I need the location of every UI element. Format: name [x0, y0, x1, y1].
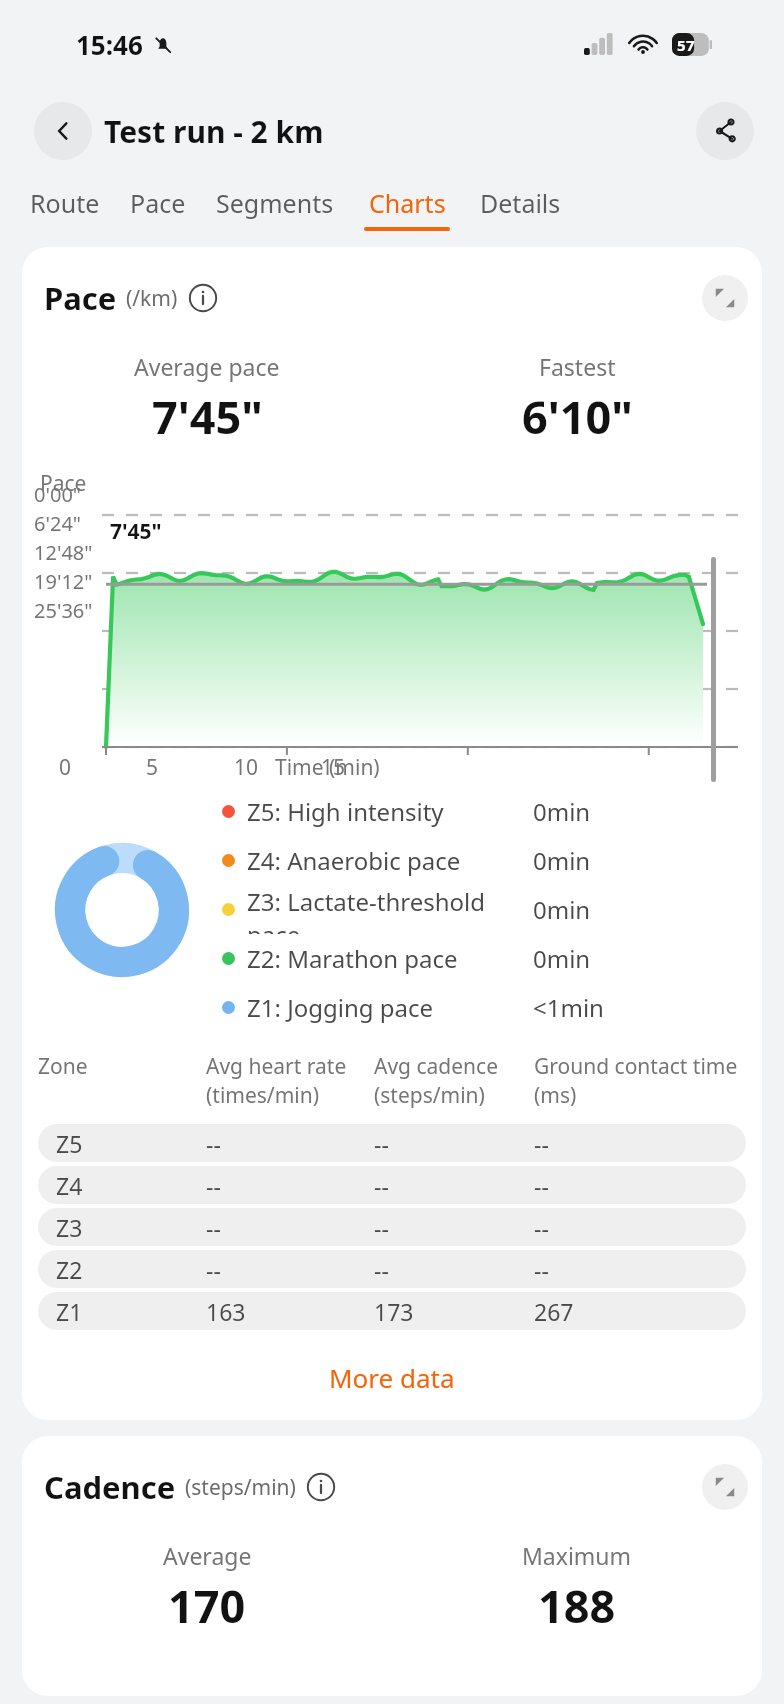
staticText: -- [206, 1170, 374, 1201]
button[interactable]: Expand chart [702, 1464, 748, 1510]
button[interactable]: Z1 [38, 1292, 746, 1330]
button[interactable]: Share [696, 102, 754, 160]
button[interactable]: Z3 [38, 1208, 746, 1246]
button[interactable]: Info [188, 283, 218, 313]
staticText: 0min [533, 893, 591, 926]
staticText: Maximum [522, 1540, 632, 1571]
staticText: (times/min) [206, 1081, 319, 1110]
button[interactable]: Z5 [38, 1124, 746, 1162]
staticText: Average pace [134, 351, 280, 382]
staticText: -- [534, 1254, 549, 1285]
staticText: -- [374, 1254, 534, 1285]
staticText: Z5 [56, 1128, 206, 1159]
button[interactable]: Details [474, 186, 567, 231]
button[interactable]: Z2: Marathon pace [222, 934, 762, 983]
staticText: (ms) [534, 1081, 577, 1110]
staticText: 173 [374, 1296, 534, 1327]
button[interactable]: Expand chart [702, 275, 748, 321]
staticText: 5 [677, 35, 686, 55]
staticText: Pace [130, 186, 186, 220]
staticText: (steps/min) [185, 1473, 296, 1502]
button[interactable]: Segments [210, 186, 340, 231]
staticText: Ground contact time [534, 1052, 738, 1081]
staticText: 170 [168, 1575, 246, 1636]
button[interactable]: Z2 [38, 1250, 746, 1288]
button[interactable]: Charts [358, 186, 456, 231]
staticText: -- [534, 1212, 549, 1243]
staticText: Z1: Jogging pace [247, 991, 533, 1024]
staticText: 25'36" [34, 597, 93, 624]
staticText: 0min [533, 795, 591, 828]
staticText: Z4: Anaerobic pace [247, 844, 533, 877]
staticText: (steps/min) [374, 1081, 485, 1110]
staticText: 7'45" [152, 386, 263, 447]
staticText: Average [163, 1540, 252, 1571]
button[interactable]: More data [22, 1348, 762, 1406]
staticText: 6'24" [34, 510, 81, 537]
staticText: -- [534, 1170, 549, 1201]
staticText: Z2: Marathon pace [247, 942, 533, 975]
staticText: Z3: Lactate-threshold pace [247, 885, 533, 934]
staticText: Z5: High intensity [247, 795, 533, 828]
staticText: More data [329, 1360, 455, 1395]
staticText: 7'45" [110, 517, 162, 546]
staticText: 10 [234, 753, 259, 782]
staticText: (/km) [126, 284, 178, 313]
staticText: Z2 [56, 1254, 206, 1285]
staticText: -- [206, 1254, 374, 1285]
staticText: Z1 [56, 1296, 206, 1327]
staticText: Route [30, 186, 100, 220]
staticText: 5 [146, 753, 159, 782]
staticText: 12'48" [34, 539, 93, 566]
staticText: Pace [44, 277, 117, 319]
button[interactable]: Z3: Lactate-threshold pace [222, 885, 762, 934]
staticText: 0'00" [34, 481, 81, 508]
staticText: 15 [321, 753, 346, 782]
staticText: Segments [216, 186, 334, 220]
staticText: Fastest [539, 351, 616, 382]
staticText: Test run - 2 km [104, 111, 324, 152]
staticText: Time (min) [275, 753, 380, 782]
button[interactable]: Info [306, 1472, 336, 1502]
staticText: 0min [533, 844, 591, 877]
staticText: -- [206, 1212, 374, 1243]
staticText: Avg cadence [374, 1052, 498, 1081]
staticText: 19'12" [34, 568, 93, 595]
staticText: <1min [533, 991, 604, 1024]
staticText: -- [374, 1128, 534, 1159]
button[interactable]: Pace [124, 186, 192, 231]
button[interactable]: Z1: Jogging pace [222, 983, 762, 1032]
staticText: -- [534, 1128, 549, 1159]
staticText: -- [374, 1170, 534, 1201]
staticText: Z3 [56, 1212, 206, 1243]
staticText: Z4 [56, 1170, 206, 1201]
staticText: Avg heart rate [206, 1052, 347, 1081]
staticText: Zone [38, 1052, 88, 1081]
staticText: 15:46 [76, 27, 143, 62]
staticText: Pace [40, 469, 87, 498]
staticText: 0 [59, 753, 72, 782]
staticText: 267 [534, 1296, 574, 1327]
staticText: -- [374, 1212, 534, 1243]
staticText: 163 [206, 1296, 374, 1327]
staticText: Charts [369, 186, 446, 220]
staticText: 6'10" [522, 386, 633, 447]
staticText: 188 [538, 1575, 616, 1636]
button[interactable]: Z5: High intensity [222, 787, 762, 836]
button[interactable]: Z4: Anaerobic pace [222, 836, 762, 885]
button[interactable]: Route [24, 186, 106, 231]
staticText: Cadence [44, 1466, 176, 1508]
staticText: -- [206, 1128, 374, 1159]
staticText: Details [480, 186, 561, 220]
button[interactable]: Z4 [38, 1166, 746, 1204]
staticText: 7 [686, 35, 695, 55]
button[interactable]: Back [34, 102, 92, 160]
staticText: 0min [533, 942, 591, 975]
